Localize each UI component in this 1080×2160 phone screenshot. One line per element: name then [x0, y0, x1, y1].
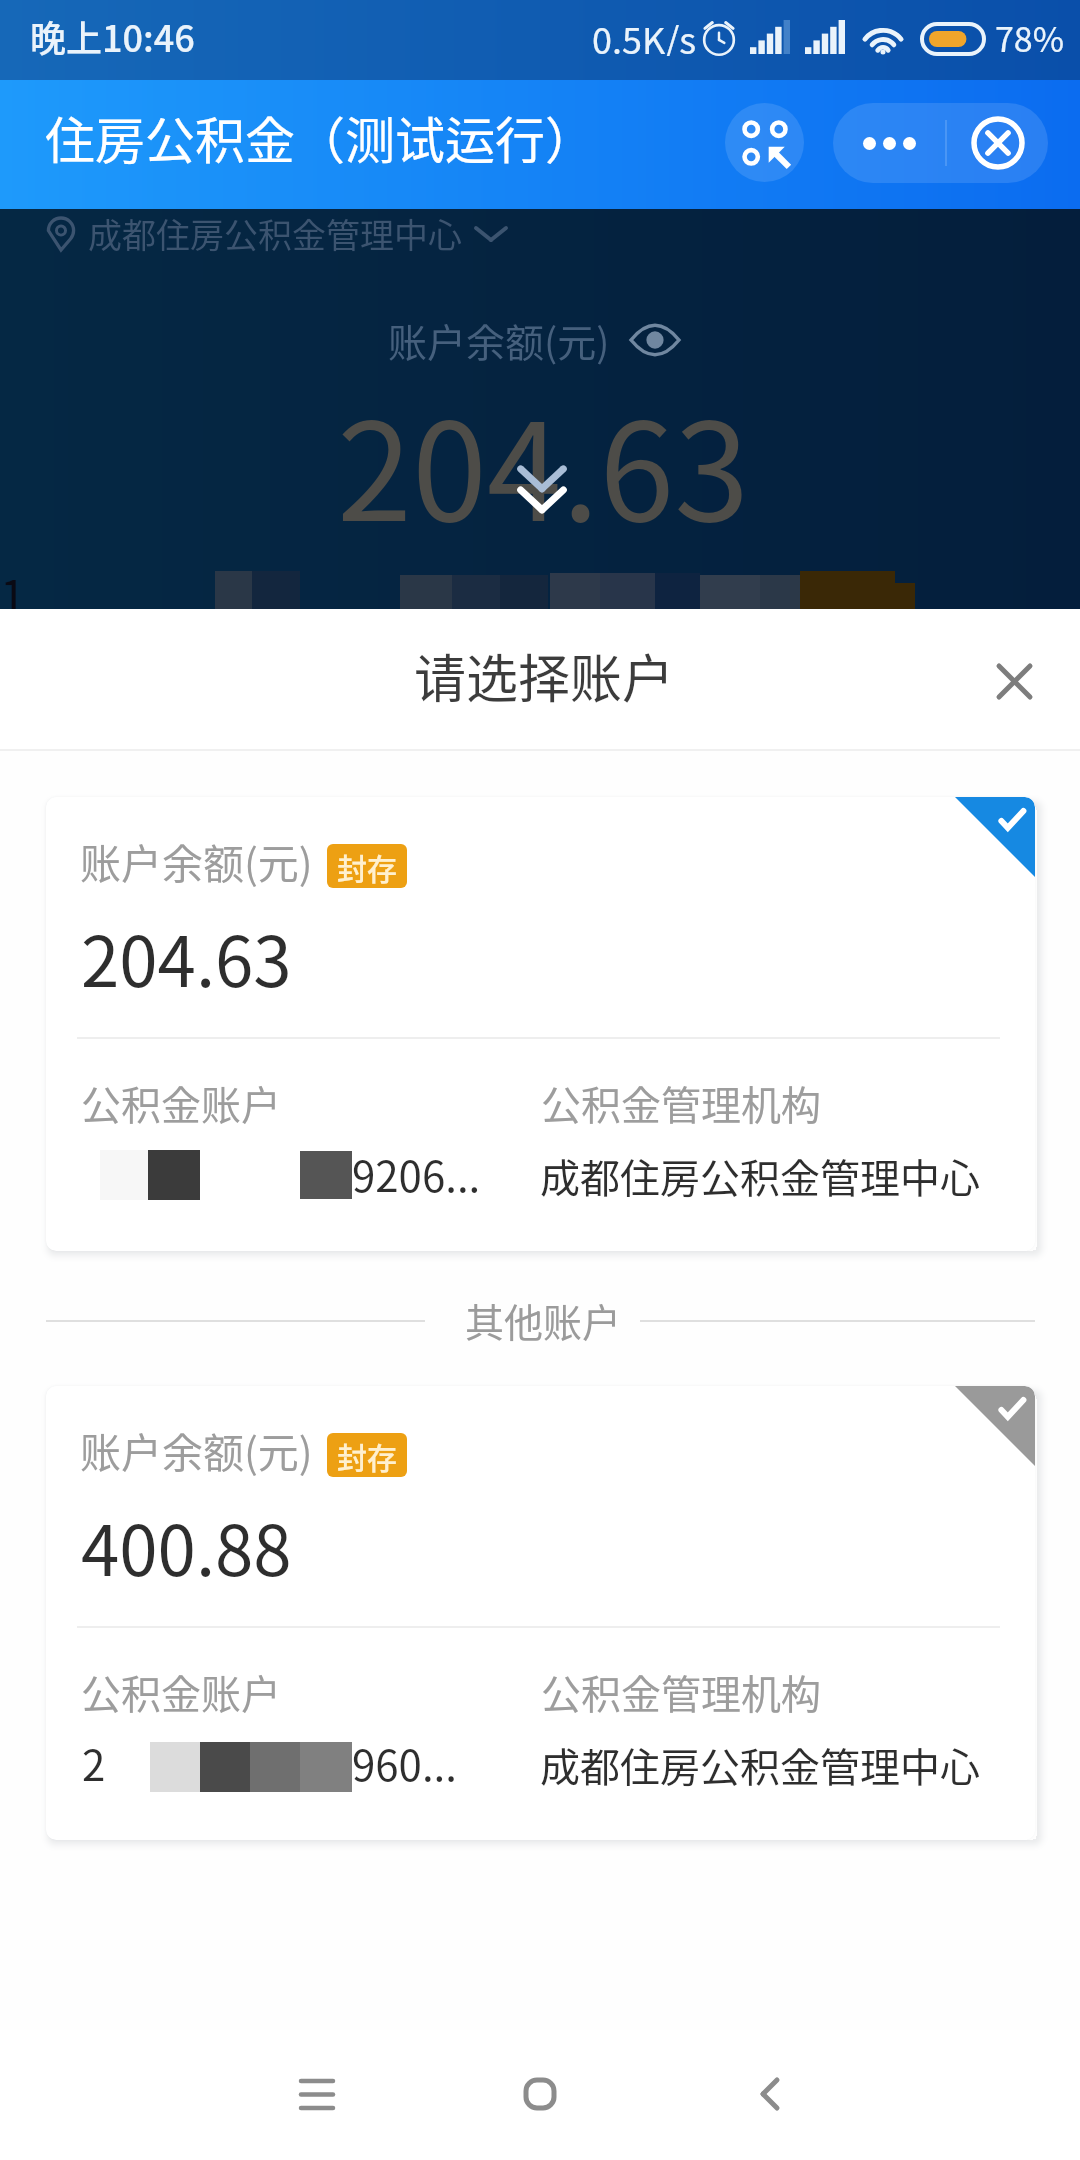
button[interactable]: More options — [833, 103, 945, 183]
button[interactable]: Mini program menu — [725, 103, 804, 182]
button[interactable]: Home — [495, 2049, 585, 2139]
button[interactable]: 账户余额(元) — [46, 1386, 1035, 1840]
staticText: 公积金管理机构 — [541, 1663, 821, 1721]
staticText: 9206... — [352, 1143, 481, 1204]
button[interactable]: Close dialog — [978, 645, 1050, 717]
staticText: 住房公积金（测试运行） — [45, 101, 595, 173]
staticText: 请选择账户 — [414, 638, 675, 713]
staticText: 封存 — [337, 845, 397, 888]
staticText: 封存 — [337, 1434, 397, 1477]
button[interactable]: Recent apps — [272, 2049, 362, 2139]
staticText: 2 — [82, 1732, 106, 1793]
staticText: 400.88 — [81, 1496, 292, 1596]
staticText: 账户余额(元) — [80, 1420, 313, 1479]
staticText: 204.63 — [337, 364, 750, 559]
button[interactable]: Back — [725, 2049, 815, 2139]
staticText: 0.5K/s — [592, 12, 697, 56]
staticText: 公积金账户 — [81, 1663, 281, 1721]
staticText: 成都住房公积金管理中心 — [540, 1736, 980, 1794]
staticText: 960... — [352, 1732, 457, 1793]
button[interactable]: Close — [947, 103, 1048, 183]
staticText: 公积金账户 — [81, 1074, 281, 1132]
staticText: 成都住房公积金管理中心 — [540, 1147, 980, 1205]
staticText: 公积金管理机构 — [541, 1074, 821, 1132]
staticText: 1 — [0, 561, 26, 628]
staticText: 账户余额(元) — [80, 831, 313, 890]
staticText: 78% — [995, 13, 1065, 57]
staticText: 204.63 — [81, 907, 292, 1007]
staticText: 晚上10:46 — [30, 10, 195, 62]
staticText: 成都住房公积金管理中心 — [88, 209, 462, 258]
button[interactable]: 账户余额(元) — [46, 797, 1035, 1251]
staticText: 其他账户 — [465, 1292, 622, 1344]
staticText: 账户余额(元) — [388, 312, 610, 368]
